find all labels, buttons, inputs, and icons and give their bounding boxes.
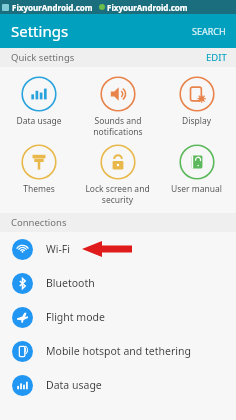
button[interactable]: Bluetooth	[0, 266, 236, 300]
staticText: Data usage	[16, 115, 62, 127]
button[interactable]: Wi-Fi	[0, 232, 236, 266]
staticText: Settings	[11, 21, 69, 41]
button[interactable]: Sounds and notifications	[78, 74, 157, 139]
button[interactable]: Data usage	[0, 74, 78, 129]
staticText: SEARCH	[192, 25, 226, 37]
staticText: Flight mode	[46, 310, 105, 324]
staticText: Bluetooth	[46, 276, 95, 290]
staticText: Lock screen and security	[85, 183, 150, 205]
staticText: Display	[182, 115, 211, 127]
staticText: Connections	[11, 216, 67, 229]
button[interactable]: Flight mode	[0, 300, 236, 334]
staticText: Sounds and notifications	[93, 115, 143, 137]
staticText: User manual	[171, 183, 222, 195]
button[interactable]: Lock screen and security	[78, 142, 157, 207]
button[interactable]: EDIT	[197, 48, 236, 67]
button[interactable]: Themes	[0, 142, 78, 197]
button[interactable]: User manual	[157, 142, 236, 197]
staticText: Mobile hotspot and tethering	[46, 344, 191, 358]
button[interactable]: Display	[157, 74, 236, 129]
staticText: EDIT	[206, 51, 227, 64]
button[interactable]: Data usage	[0, 368, 236, 402]
staticText: FixyourAndroid.com	[107, 2, 188, 13]
staticText: Data usage	[46, 378, 102, 392]
button[interactable]: SEARCH	[182, 19, 236, 43]
staticText: Quick settings	[11, 51, 75, 64]
staticText: Wi-Fi	[46, 242, 71, 256]
staticText: FixyourAndroid.com	[12, 2, 93, 13]
button[interactable]: Mobile hotspot and tethering	[0, 334, 236, 368]
staticText: Themes	[23, 183, 55, 195]
